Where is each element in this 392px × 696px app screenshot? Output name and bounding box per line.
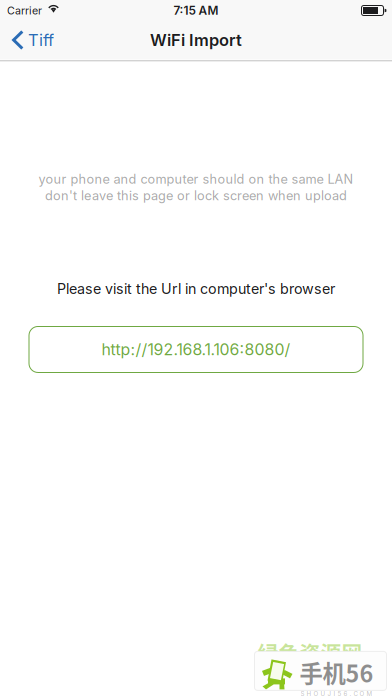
button[interactable]: Tiff bbox=[0, 21, 64, 59]
staticText: your phone and computer should on the sa… bbox=[38, 171, 353, 187]
staticText: don't leave this page or lock screen whe… bbox=[45, 188, 347, 203]
staticText: Tiff bbox=[28, 30, 54, 50]
button[interactable]: http://192.168.1.106:8080/ bbox=[29, 326, 363, 372]
staticText: Please visit the Url in computer's brows… bbox=[57, 280, 335, 297]
staticText: S H O U J I 5 6 . C O M bbox=[300, 690, 372, 696]
staticText: 绿色资源网 bbox=[257, 637, 362, 667]
staticText: http://192.168.1.106:8080/ bbox=[101, 340, 290, 359]
staticText: 7:15 AM bbox=[173, 3, 218, 18]
staticText: 手机56 bbox=[299, 655, 373, 689]
staticText: Carrier bbox=[7, 4, 42, 17]
staticText: WiFi Import bbox=[150, 30, 242, 50]
